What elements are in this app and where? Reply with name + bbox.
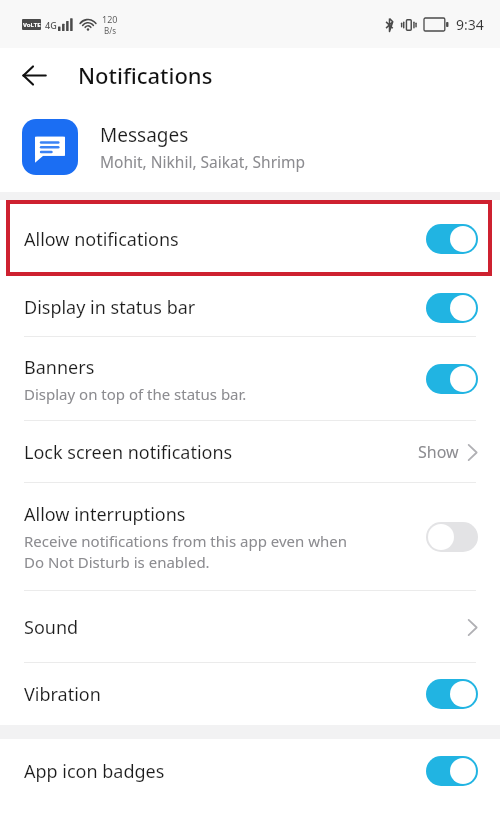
button[interactable]: Banners [0,337,500,421]
staticText: Allow interruptions [24,502,186,527]
button[interactable]: Back [12,53,56,97]
staticText: Sound [24,615,467,640]
staticText: Receive notifications from this app even… [24,531,347,573]
button[interactable]: On [426,679,478,709]
staticText: Lock screen notifications [24,440,418,465]
staticText: B/s [104,25,117,36]
staticText: VoLTE [23,21,41,29]
staticText: Display in status bar [24,295,196,320]
button[interactable]: Messages [0,102,500,192]
button[interactable]: Sound [0,591,500,663]
button[interactable]: Display in status bar [0,278,500,337]
staticText: Vibration [24,682,101,707]
staticText: Display on top of the status bar. [24,384,247,404]
button[interactable]: Vibration [0,663,500,725]
staticText: Notifications [78,60,213,90]
staticText: 120 [102,13,118,25]
button[interactable]: Allow interruptions [0,483,500,591]
staticText: 9:34 [456,15,484,34]
button[interactable]: App icon badges [0,739,500,803]
button[interactable]: On [426,364,478,394]
staticText: Allow notifications [24,227,179,252]
staticText: App icon badges [24,759,165,784]
staticText: Mohit, Nikhil, Saikat, Shrimp [100,151,306,172]
staticText: Show [418,441,459,463]
staticText: Banners [24,355,95,380]
button[interactable]: Allow notifications [0,200,500,278]
button[interactable]: Off [426,522,478,552]
button[interactable]: On [426,756,478,786]
staticText: 4G [45,19,57,31]
button[interactable]: On [426,293,478,323]
button[interactable]: On [426,224,478,254]
button[interactable]: Lock screen notifications [0,421,500,483]
staticText: Messages [100,122,189,148]
